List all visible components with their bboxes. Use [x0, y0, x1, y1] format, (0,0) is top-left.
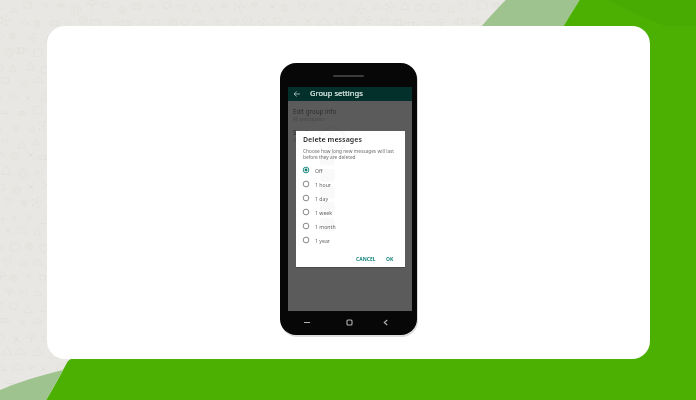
button[interactable]: 1 year	[296, 233, 405, 247]
staticText: OK	[386, 256, 394, 263]
staticText: 1 day	[315, 195, 329, 202]
button[interactable]: Back	[378, 315, 392, 329]
button[interactable]: 1 day	[296, 191, 405, 205]
button[interactable]: 1 week	[296, 205, 405, 219]
staticText: All participants	[293, 116, 326, 122]
button[interactable]: 1 month	[296, 219, 405, 233]
staticText: Send messages	[293, 128, 339, 136]
staticText: Delete messages	[303, 135, 362, 145]
staticText: 1 hour	[315, 181, 332, 188]
staticText: All participants	[293, 137, 326, 143]
button[interactable]: Off	[296, 163, 405, 177]
staticText: Choose how long new messages will last b…	[303, 148, 403, 160]
button[interactable]: Navigate back	[292, 89, 301, 98]
staticText: 1 month	[315, 223, 336, 230]
button[interactable]: 1 hour	[296, 177, 405, 191]
button[interactable]: Recents	[300, 315, 314, 329]
staticText: Off	[315, 167, 323, 174]
button[interactable]: OK	[378, 252, 405, 267]
staticText: CANCEL	[356, 256, 376, 263]
staticText: 1 week	[315, 209, 333, 216]
staticText: Group settings	[310, 88, 363, 98]
button[interactable]: Home	[342, 315, 356, 329]
staticText: 1 year	[315, 237, 330, 244]
button[interactable]: CANCEL	[354, 252, 378, 267]
staticText: Edit group info	[293, 107, 337, 115]
